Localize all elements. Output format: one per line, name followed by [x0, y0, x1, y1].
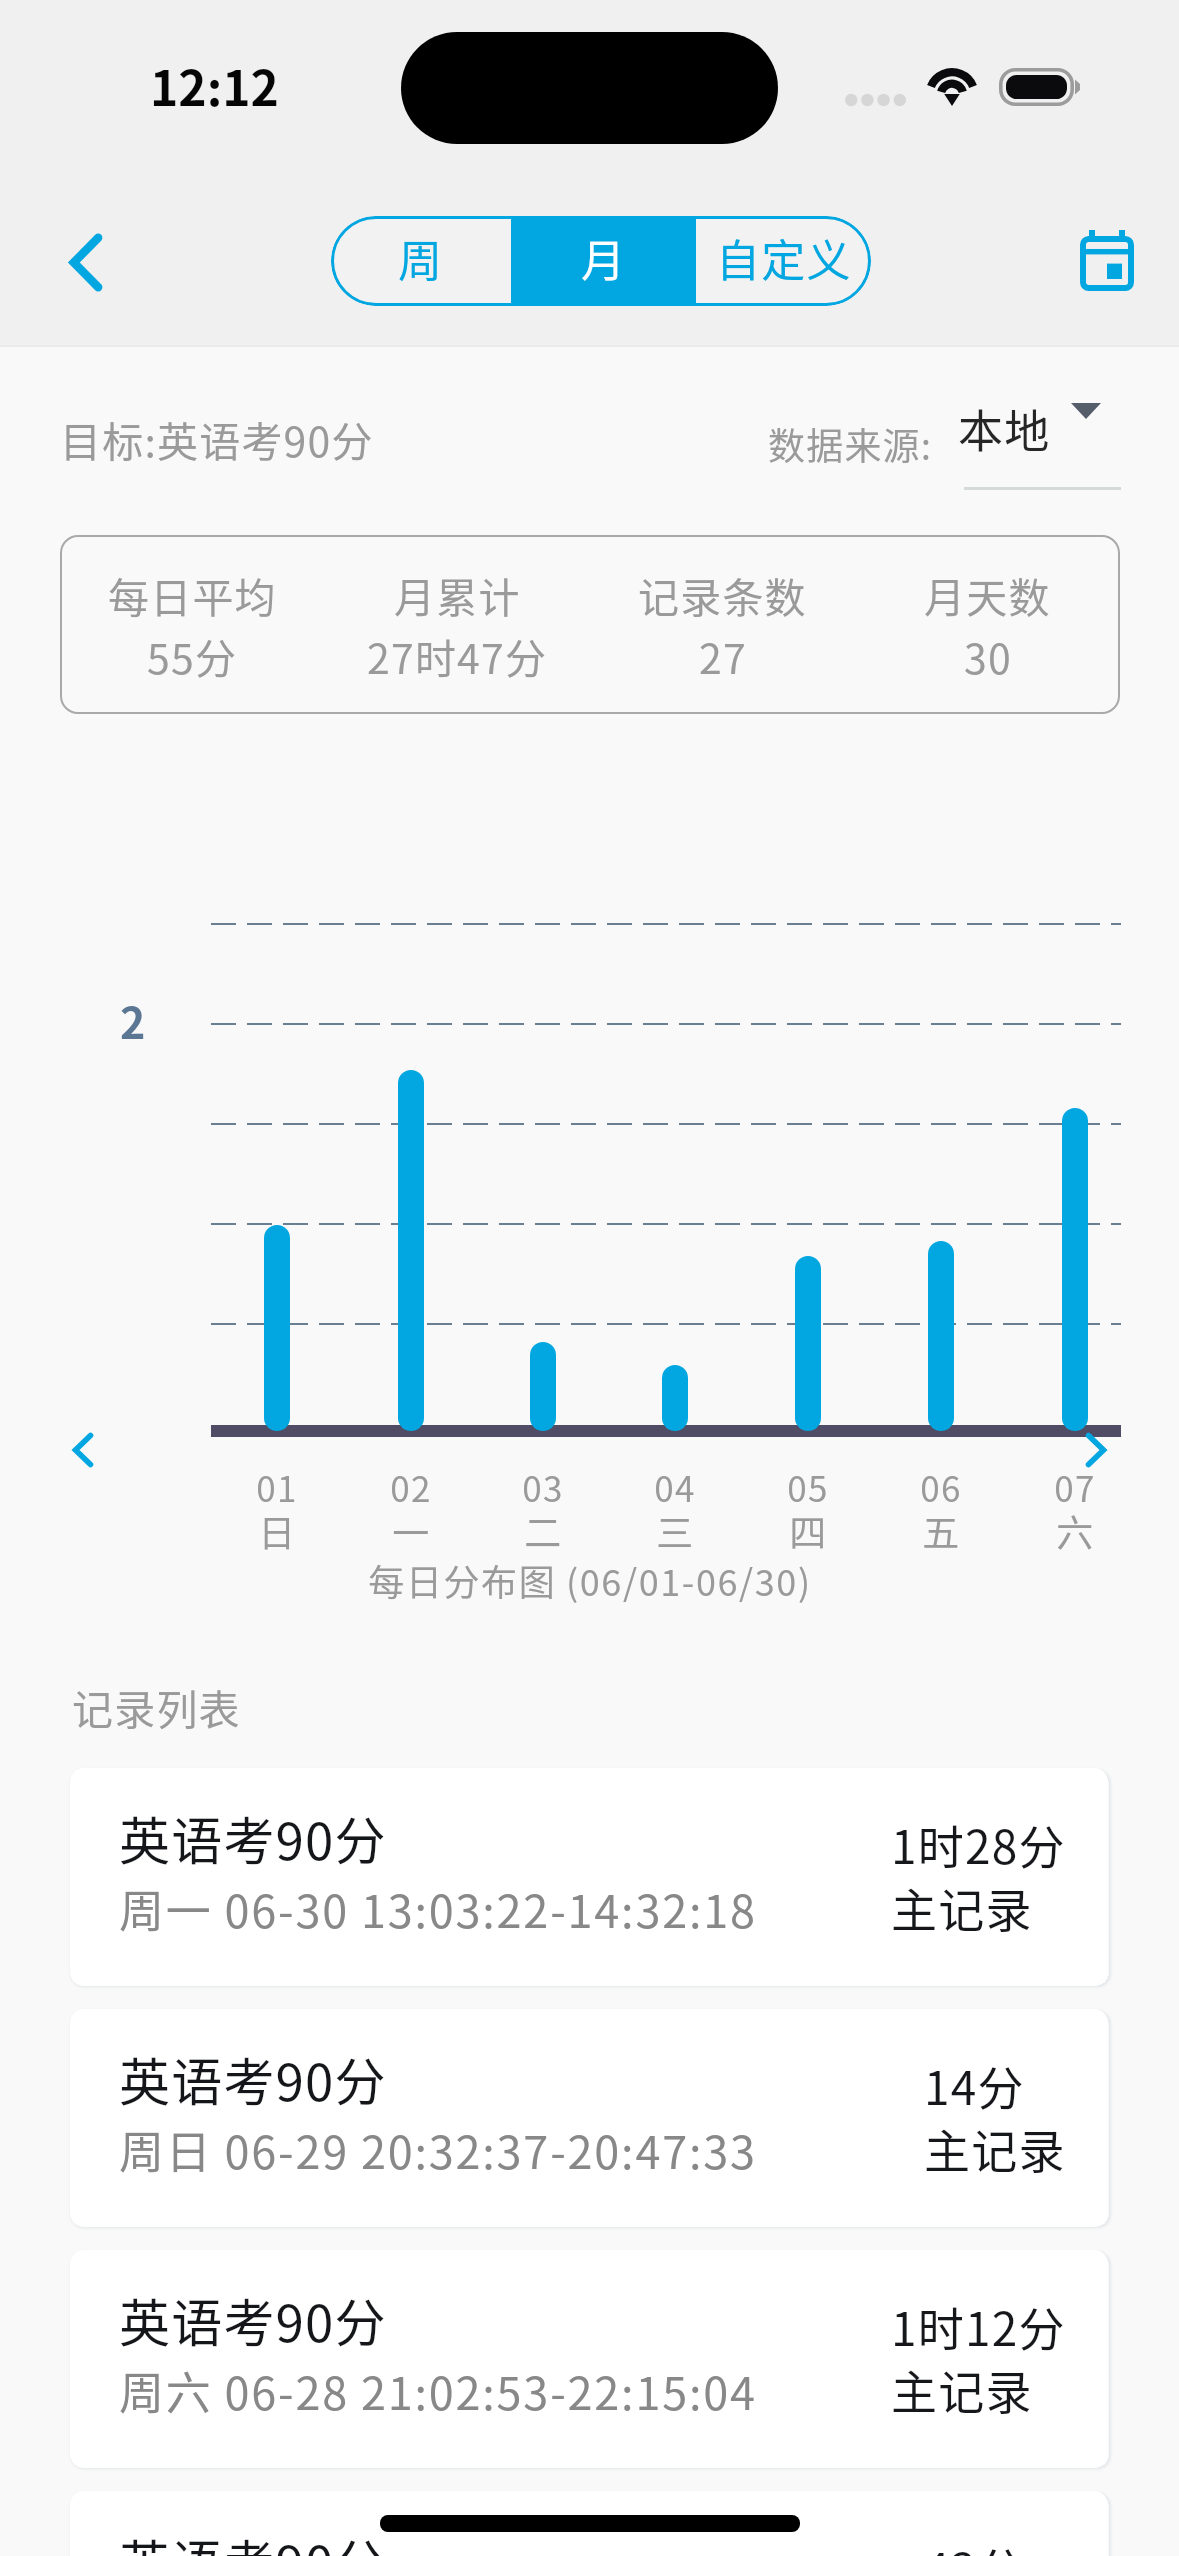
- staticText: 周日 06-29 20:32:37-20:47:33: [119, 2117, 757, 2182]
- staticText: 04: [654, 1461, 696, 1512]
- button[interactable]: 本地: [958, 396, 1121, 496]
- staticText: 1时28分: [891, 1811, 1066, 1878]
- staticText: 月累计: [394, 565, 521, 624]
- staticText: 周: [398, 226, 444, 290]
- staticText: 数据来源:: [768, 417, 933, 471]
- staticText: 主记录: [924, 2115, 1066, 2182]
- staticText: 周六 06-28 21:02:53-22:15:04: [119, 2358, 757, 2423]
- staticText: 英语考90分: [119, 2283, 387, 2357]
- staticText: 02: [390, 1461, 432, 1512]
- button[interactable]: 英语考90分: [70, 1768, 1108, 1986]
- staticText: 42分: [924, 2534, 1025, 2556]
- button[interactable]: 英语考90分: [70, 2250, 1108, 2468]
- staticText: 二: [524, 1504, 563, 1558]
- button[interactable]: Next period: [1041, 1395, 1151, 1505]
- staticText: 目标:英语考90分: [60, 409, 374, 468]
- staticText: 自定义: [716, 226, 852, 290]
- button[interactable]: Calendar: [1052, 205, 1162, 315]
- staticText: 每日分布图 (06/01-06/30): [368, 1554, 812, 1606]
- staticText: 主记录: [891, 2356, 1033, 2423]
- button[interactable]: Previous period: [28, 1395, 138, 1505]
- staticText: 周一 06-30 13:03:22-14:32:18: [119, 1876, 757, 1941]
- staticText: 03: [522, 1461, 564, 1512]
- staticText: 月: [581, 226, 627, 290]
- button[interactable]: 英语考90分: [70, 2009, 1108, 2227]
- button[interactable]: 英语考90分: [70, 2491, 1108, 2556]
- staticText: 记录条数: [638, 565, 807, 624]
- staticText: 06: [920, 1461, 962, 1512]
- staticText: 英语考90分: [119, 2042, 387, 2116]
- staticText: 三: [656, 1504, 695, 1558]
- staticText: 主记录: [891, 1874, 1033, 1941]
- staticText: 一: [392, 1504, 431, 1558]
- staticText: 本地: [958, 396, 1051, 461]
- staticText: 27时47分: [367, 626, 548, 685]
- button[interactable]: 自定义: [696, 216, 871, 306]
- staticText: 记录列表: [72, 1677, 241, 1736]
- staticText: 四: [789, 1504, 828, 1558]
- staticText: 英语考90分: [119, 1801, 387, 1875]
- staticText: 1时12分: [891, 2293, 1066, 2360]
- staticText: 五: [922, 1504, 961, 1558]
- staticText: 日: [258, 1504, 297, 1558]
- staticText: 27: [699, 626, 747, 685]
- button[interactable]: 月: [511, 216, 696, 306]
- staticText: 55分: [147, 626, 238, 685]
- staticText: 12:12: [150, 50, 279, 120]
- staticText: 2: [120, 989, 146, 1051]
- staticText: 月天数: [924, 565, 1051, 624]
- staticText: 05: [787, 1461, 829, 1512]
- staticText: 英语考90分: [119, 2524, 387, 2556]
- staticText: 六: [1056, 1504, 1095, 1558]
- staticText: 30: [964, 626, 1012, 685]
- staticText: 每日平均: [108, 565, 277, 624]
- staticText: 01: [256, 1461, 298, 1512]
- staticText: 14分: [924, 2052, 1025, 2119]
- button[interactable]: 周: [331, 216, 511, 306]
- button[interactable]: Back: [30, 206, 142, 318]
- staticText: 07: [1054, 1461, 1096, 1512]
